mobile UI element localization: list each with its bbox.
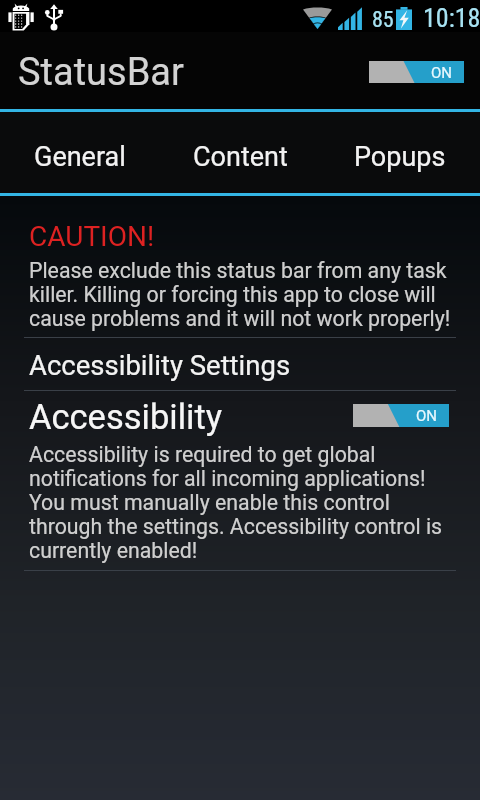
staticText: StatusBar <box>18 50 184 95</box>
staticText: 10:18 <box>423 3 480 33</box>
staticText: Accessibility <box>29 397 223 437</box>
button[interactable]: Popups <box>320 112 480 193</box>
button[interactable]: Enable status bar <box>369 61 464 83</box>
staticText: Popups <box>354 141 446 173</box>
staticText: Content <box>193 141 288 173</box>
staticText: ON <box>431 64 453 82</box>
staticText: Please exclude this status bar from any … <box>29 258 455 331</box>
staticText: CAUTION! <box>29 220 155 253</box>
staticText: Accessibility Settings <box>29 349 291 381</box>
button[interactable]: Content <box>160 112 320 193</box>
button[interactable]: Enable accessibility <box>353 404 449 427</box>
button[interactable]: General <box>0 112 160 193</box>
staticText: General <box>34 141 126 173</box>
staticText: Accessibility is required to get global … <box>29 442 455 563</box>
staticText: ON <box>416 407 438 425</box>
staticText: 85 <box>372 7 394 33</box>
